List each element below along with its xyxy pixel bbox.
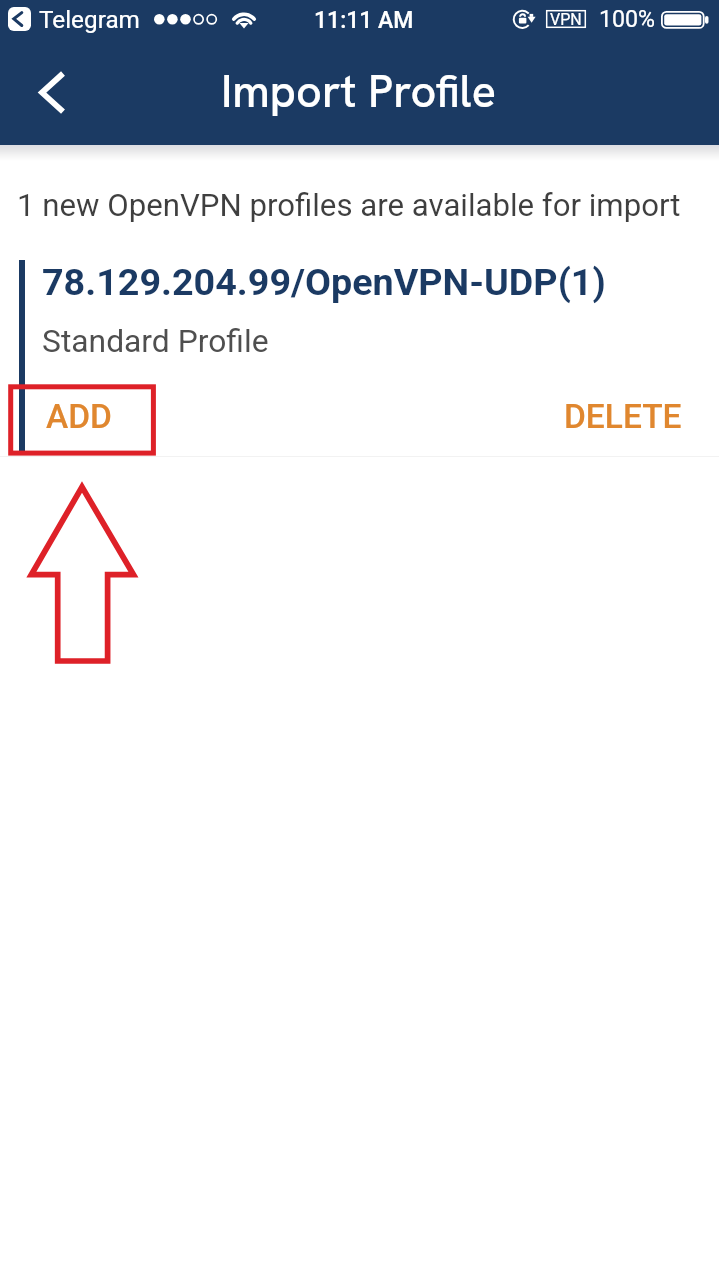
button[interactable]: Back (16, 58, 86, 128)
staticText: 1 new OpenVPN profiles are available for… (17, 187, 681, 224)
staticText: ADD (46, 397, 112, 436)
staticText: 100% (599, 5, 656, 32)
button[interactable]: DELETE (541, 388, 705, 445)
button[interactable]: ADD (23, 388, 135, 445)
staticText: DELETE (564, 397, 682, 436)
button[interactable]: Back to Telegram (8, 7, 31, 31)
staticText: Import Profile (221, 62, 497, 121)
staticText: Telegram (39, 5, 140, 33)
staticText: VPN (550, 10, 582, 28)
staticText: Standard Profile (42, 322, 269, 359)
staticText: 11:11 AM (314, 7, 414, 34)
staticText: 78.129.204.99/OpenVPN-UDP(1) (42, 260, 606, 304)
